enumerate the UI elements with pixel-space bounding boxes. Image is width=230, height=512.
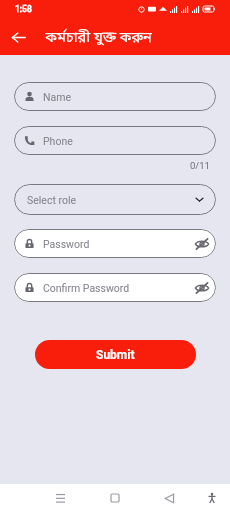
staticText: Confirm Password xyxy=(43,282,130,294)
button[interactable]: Back xyxy=(156,485,182,511)
staticText: 1:58 xyxy=(15,4,32,14)
staticText: Password xyxy=(43,238,90,250)
button[interactable]: Accessibility xyxy=(199,485,225,511)
button[interactable]: Name xyxy=(14,82,216,111)
button[interactable]: Home xyxy=(102,485,128,511)
button[interactable]: Submit xyxy=(35,340,196,369)
button[interactable]: Recent apps xyxy=(47,485,73,511)
staticText: কর্মচারী যুক্ত করুন xyxy=(45,29,152,48)
button[interactable]: Phone xyxy=(14,126,216,155)
button[interactable]: Back xyxy=(5,24,31,50)
staticText: Select role xyxy=(27,194,77,206)
staticText: Name xyxy=(43,91,71,103)
staticText: 0/11 xyxy=(190,160,210,171)
button[interactable]: Password xyxy=(14,229,216,258)
button[interactable]: Confirm Password xyxy=(14,273,216,302)
button[interactable]: Select role xyxy=(14,184,216,215)
staticText: Submit xyxy=(96,348,135,362)
staticText: Phone xyxy=(43,135,73,147)
